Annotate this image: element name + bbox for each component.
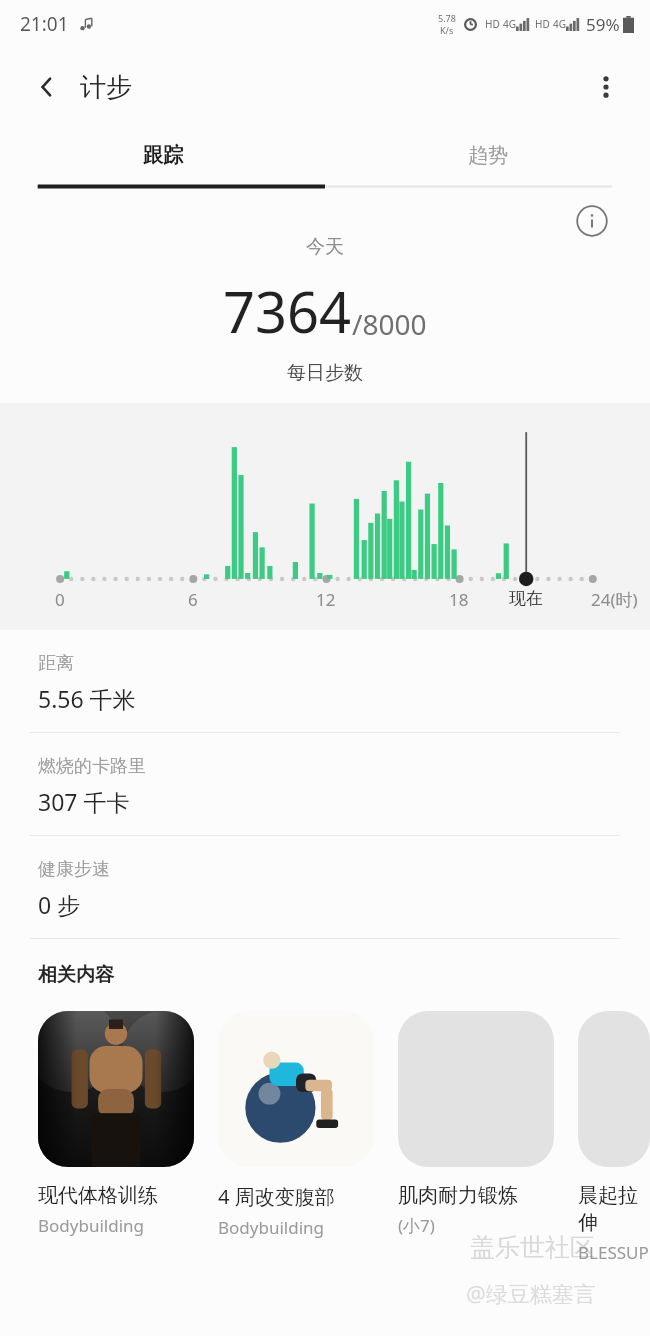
staticText: 晨起拉伸 bbox=[578, 1183, 650, 1235]
staticText: /8000 bbox=[352, 305, 427, 343]
staticText: 0 步 bbox=[38, 889, 81, 920]
staticText: HD bbox=[485, 17, 500, 31]
staticText: 距离 bbox=[38, 652, 74, 675]
staticText: 跟踪 bbox=[143, 143, 183, 168]
button[interactable]: 4 周改变腹部 bbox=[218, 1011, 374, 1239]
button[interactable]: 晨起拉伸 bbox=[578, 1011, 650, 1264]
staticText: K/s bbox=[440, 24, 454, 36]
staticText: 6 bbox=[188, 588, 198, 611]
staticText: 59% bbox=[586, 13, 620, 36]
staticText: 21:01 bbox=[20, 11, 69, 37]
staticText: 今天 bbox=[306, 235, 344, 259]
staticText: 现在 bbox=[509, 588, 543, 609]
button[interactable]: 健康步速 bbox=[0, 836, 650, 939]
staticText: 7364 bbox=[223, 273, 352, 349]
staticText: 12 bbox=[316, 588, 336, 611]
button[interactable]: 燃烧的卡路里 bbox=[0, 733, 650, 836]
staticText: 相关内容 bbox=[38, 963, 114, 987]
staticText: 每日步数 bbox=[287, 361, 363, 385]
staticText: Bodybuilding bbox=[38, 1214, 144, 1237]
button[interactable]: More options bbox=[584, 65, 628, 109]
staticText: 5.56 千米 bbox=[38, 683, 136, 714]
staticText: @绿豆糕塞言 bbox=[466, 1278, 596, 1308]
staticText: 肌肉耐力锻炼 bbox=[398, 1183, 518, 1208]
staticText: 24(时) bbox=[591, 588, 638, 611]
staticText: 4G bbox=[553, 17, 566, 31]
staticText: 盖乐世社区 bbox=[470, 1232, 595, 1263]
staticText: HD bbox=[535, 17, 550, 31]
staticText: 18 bbox=[449, 588, 469, 611]
staticText: 趋势 bbox=[468, 143, 508, 168]
button[interactable]: Back bbox=[26, 66, 68, 108]
staticText: 4 周改变腹部 bbox=[218, 1183, 335, 1210]
button[interactable]: 趋势 bbox=[325, 126, 650, 184]
staticText: BLESSUP bbox=[578, 1241, 649, 1264]
staticText: 健康步速 bbox=[38, 858, 110, 881]
staticText: 307 千卡 bbox=[38, 786, 130, 817]
staticText: (小7) bbox=[398, 1214, 435, 1237]
staticText: 5.78 bbox=[438, 12, 456, 24]
staticText: 0 bbox=[55, 588, 65, 611]
staticText: 计步 bbox=[80, 71, 132, 104]
staticText: Bodybuilding bbox=[218, 1216, 324, 1239]
button[interactable]: 跟踪 bbox=[0, 126, 325, 184]
staticText: 燃烧的卡路里 bbox=[38, 755, 146, 778]
button[interactable]: Information bbox=[572, 201, 612, 241]
staticText: 现代体格训练 bbox=[38, 1183, 158, 1208]
button[interactable]: 距离 bbox=[0, 630, 650, 733]
staticText: 4G bbox=[503, 17, 516, 31]
button[interactable]: 肌肉耐力锻炼 bbox=[398, 1011, 554, 1237]
button[interactable]: 现代体格训练 bbox=[38, 1011, 194, 1237]
